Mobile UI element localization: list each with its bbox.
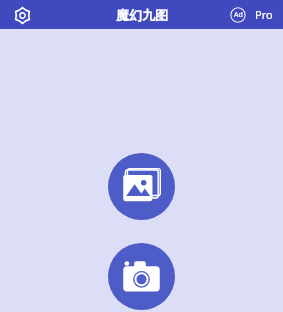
button[interactable]: Open gallery xyxy=(108,153,175,220)
button[interactable]: Take a photo xyxy=(108,243,175,310)
staticText: Ad xyxy=(234,10,243,20)
staticText: Pro xyxy=(255,7,273,22)
button[interactable]: Pro xyxy=(253,6,275,23)
button[interactable]: Settings xyxy=(9,2,35,28)
staticText: 魔幻九图 xyxy=(116,7,168,23)
button[interactable]: Ad xyxy=(230,7,246,23)
